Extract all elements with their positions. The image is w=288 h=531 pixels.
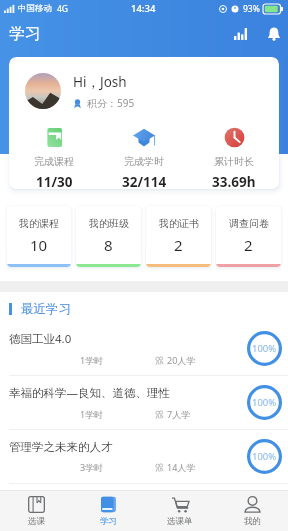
button[interactable]: 选课单	[144, 491, 216, 531]
button[interactable]: Statistics	[227, 20, 254, 47]
staticText: 32/114	[122, 173, 167, 189]
staticText: 管理学之未来的人才	[9, 440, 113, 454]
staticText: 33.69h	[212, 173, 256, 189]
staticText: 选课单	[167, 516, 193, 527]
staticText: 幸福的科学—良知、道德、理性	[9, 385, 170, 401]
staticText: 学习	[9, 24, 41, 44]
staticText: 93%	[243, 3, 260, 15]
staticText: 1学时	[80, 354, 104, 366]
staticText: 8	[104, 235, 113, 255]
button[interactable]: 我的证书	[146, 206, 211, 267]
staticText: 11/30	[36, 173, 73, 189]
button[interactable]: 我的	[216, 491, 288, 531]
button[interactable]: 我的课程	[7, 206, 71, 267]
staticText: 2	[174, 235, 183, 255]
staticText: 1学时	[80, 408, 104, 420]
staticText: 选课	[28, 516, 45, 527]
staticText: 德国工业4.0	[9, 331, 72, 347]
staticText: 100%	[252, 342, 277, 355]
staticText: 最近学习	[21, 301, 71, 317]
staticText: 我的班级	[89, 217, 129, 230]
button[interactable]: 德国工业4.0	[0, 322, 288, 376]
staticText: 100%	[252, 450, 277, 463]
staticText: 调查问卷	[229, 217, 269, 230]
button[interactable]: 调查问卷	[216, 206, 281, 267]
staticText: 我的课程	[19, 217, 59, 230]
staticText: 我的	[244, 516, 261, 527]
button[interactable]: 选课	[0, 491, 72, 531]
staticText: 3学时	[80, 461, 104, 473]
button[interactable]: 学习	[72, 491, 144, 531]
staticText: 7人学	[167, 408, 191, 420]
staticText: 完成课程	[34, 155, 74, 168]
staticText: 积分：595	[87, 96, 135, 110]
staticText: 14:34	[131, 2, 156, 15]
staticText: 100%	[252, 396, 277, 409]
staticText: 中国移动	[18, 3, 52, 14]
staticText: 学习	[100, 516, 117, 527]
staticText: 累计时长	[214, 155, 254, 168]
staticText: 4G	[57, 3, 69, 15]
staticText: 14人学	[167, 461, 196, 473]
staticText: 20人学	[167, 354, 196, 366]
button[interactable]: Notifications	[260, 20, 287, 47]
button[interactable]: Hi，Josh	[9, 57, 279, 189]
button[interactable]: 管理学之未来的人才	[0, 430, 288, 484]
staticText: 完成学时	[124, 155, 164, 168]
button[interactable]: 幸福的科学—良知、道德、理性	[0, 376, 288, 430]
staticText: 我的证书	[159, 217, 199, 230]
staticText: Hi，Josh	[73, 73, 127, 91]
staticText: 10	[30, 235, 48, 255]
button[interactable]: 我的班级	[76, 206, 141, 267]
staticText: 2	[244, 235, 253, 255]
